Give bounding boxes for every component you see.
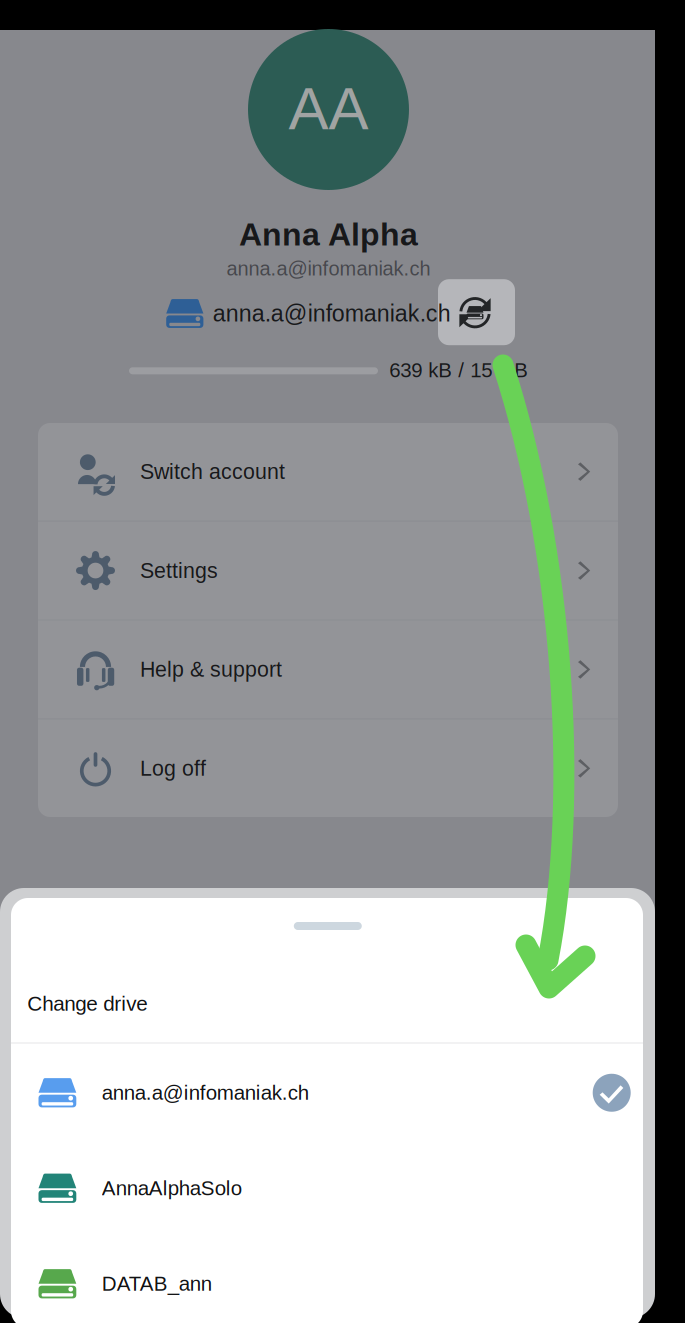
staticText: Change drive <box>27 992 147 1015</box>
staticText: Help & support <box>140 657 282 681</box>
staticText: DATAB_ann <box>102 1272 212 1295</box>
staticText: AA <box>288 75 368 142</box>
button[interactable]: Settings <box>38 522 618 619</box>
button[interactable]: Help & support <box>38 621 618 718</box>
staticText: Anna Alpha <box>239 217 418 252</box>
button[interactable]: Log off <box>38 720 618 817</box>
staticText: Settings <box>140 559 218 582</box>
staticText: anna.a@infomaniak.ch <box>102 1081 309 1104</box>
button[interactable]: Change drive <box>438 279 515 345</box>
button[interactable]: AnnaAlphaSolo <box>11 1140 643 1236</box>
staticText: anna.a@infomaniak.ch <box>226 257 430 280</box>
button[interactable]: anna.a@infomaniak.ch <box>11 1045 643 1140</box>
staticText: Log off <box>140 756 206 780</box>
staticText: Switch account <box>140 460 285 483</box>
staticText: AnnaAlphaSolo <box>102 1177 242 1200</box>
button[interactable]: DATAB_ann <box>11 1236 643 1323</box>
button[interactable]: Switch account <box>38 423 618 520</box>
staticText: anna.a@infomaniak.ch <box>213 300 451 326</box>
staticText: 639 kB / 15 GB <box>389 359 528 382</box>
